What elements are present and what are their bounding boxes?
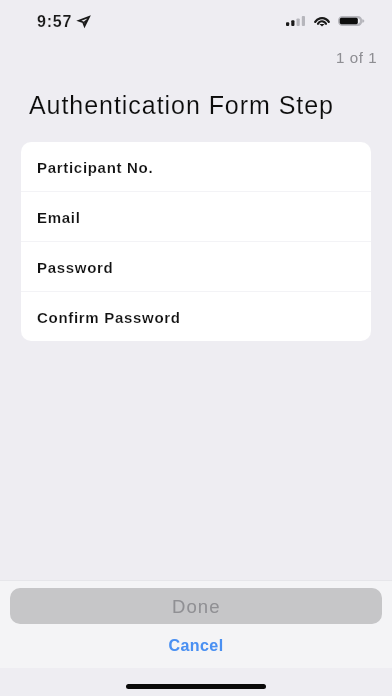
staticText: 9:57 bbox=[37, 13, 73, 31]
button[interactable]: Participant No. bbox=[21, 142, 371, 191]
button[interactable]: Email bbox=[21, 192, 371, 241]
button[interactable]: Password bbox=[21, 242, 371, 291]
staticText: Participant No. bbox=[37, 159, 154, 176]
staticText: Confirm Password bbox=[37, 309, 181, 326]
staticText: Done bbox=[172, 596, 221, 617]
staticText: Password bbox=[37, 259, 114, 276]
staticText: Cancel bbox=[168, 637, 224, 655]
button[interactable]: Done bbox=[10, 588, 382, 624]
button[interactable]: Cancel bbox=[0, 630, 392, 662]
staticText: Email bbox=[37, 209, 81, 226]
staticText: Authentication Form Step bbox=[29, 91, 334, 119]
staticText: 1 of 1 bbox=[336, 49, 378, 66]
button[interactable]: Confirm Password bbox=[21, 292, 371, 341]
